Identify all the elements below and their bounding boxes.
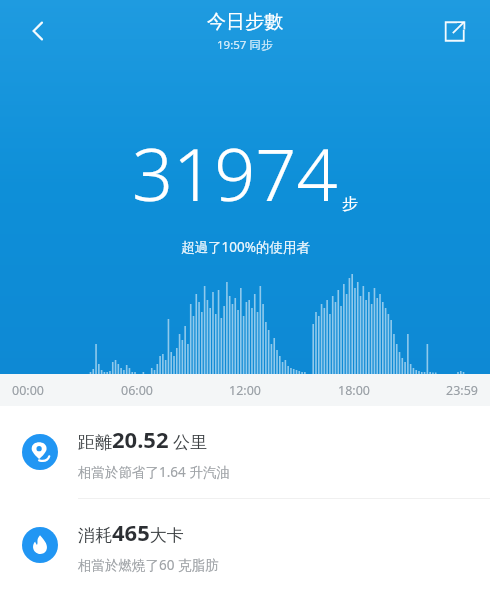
staticText: 步 [342,194,358,214]
button[interactable]: Back [14,7,62,55]
staticText: 超過了100%的使用者 [181,238,310,256]
button[interactable]: Share [430,7,478,55]
button[interactable]: 消耗465大卡 [0,499,490,591]
staticText: 消耗465大卡 [78,517,184,547]
staticText: 今日步數 [207,10,283,34]
staticText: 12:00 [229,382,261,399]
staticText: 00:00 [12,382,44,399]
staticText: 距離20.52 公里 [78,424,207,454]
staticText: 相當於燃燒了60 克脂肪 [78,556,219,574]
staticText: 19:57 同步 [217,37,273,53]
staticText: 23:59 [446,382,478,399]
button[interactable]: 距離20.52 公里 [0,406,490,498]
staticText: 相當於節省了1.64 升汽油 [78,463,230,481]
staticText: 06:00 [121,382,153,399]
staticText: 31974 [132,124,338,222]
staticText: 18:00 [338,382,370,399]
